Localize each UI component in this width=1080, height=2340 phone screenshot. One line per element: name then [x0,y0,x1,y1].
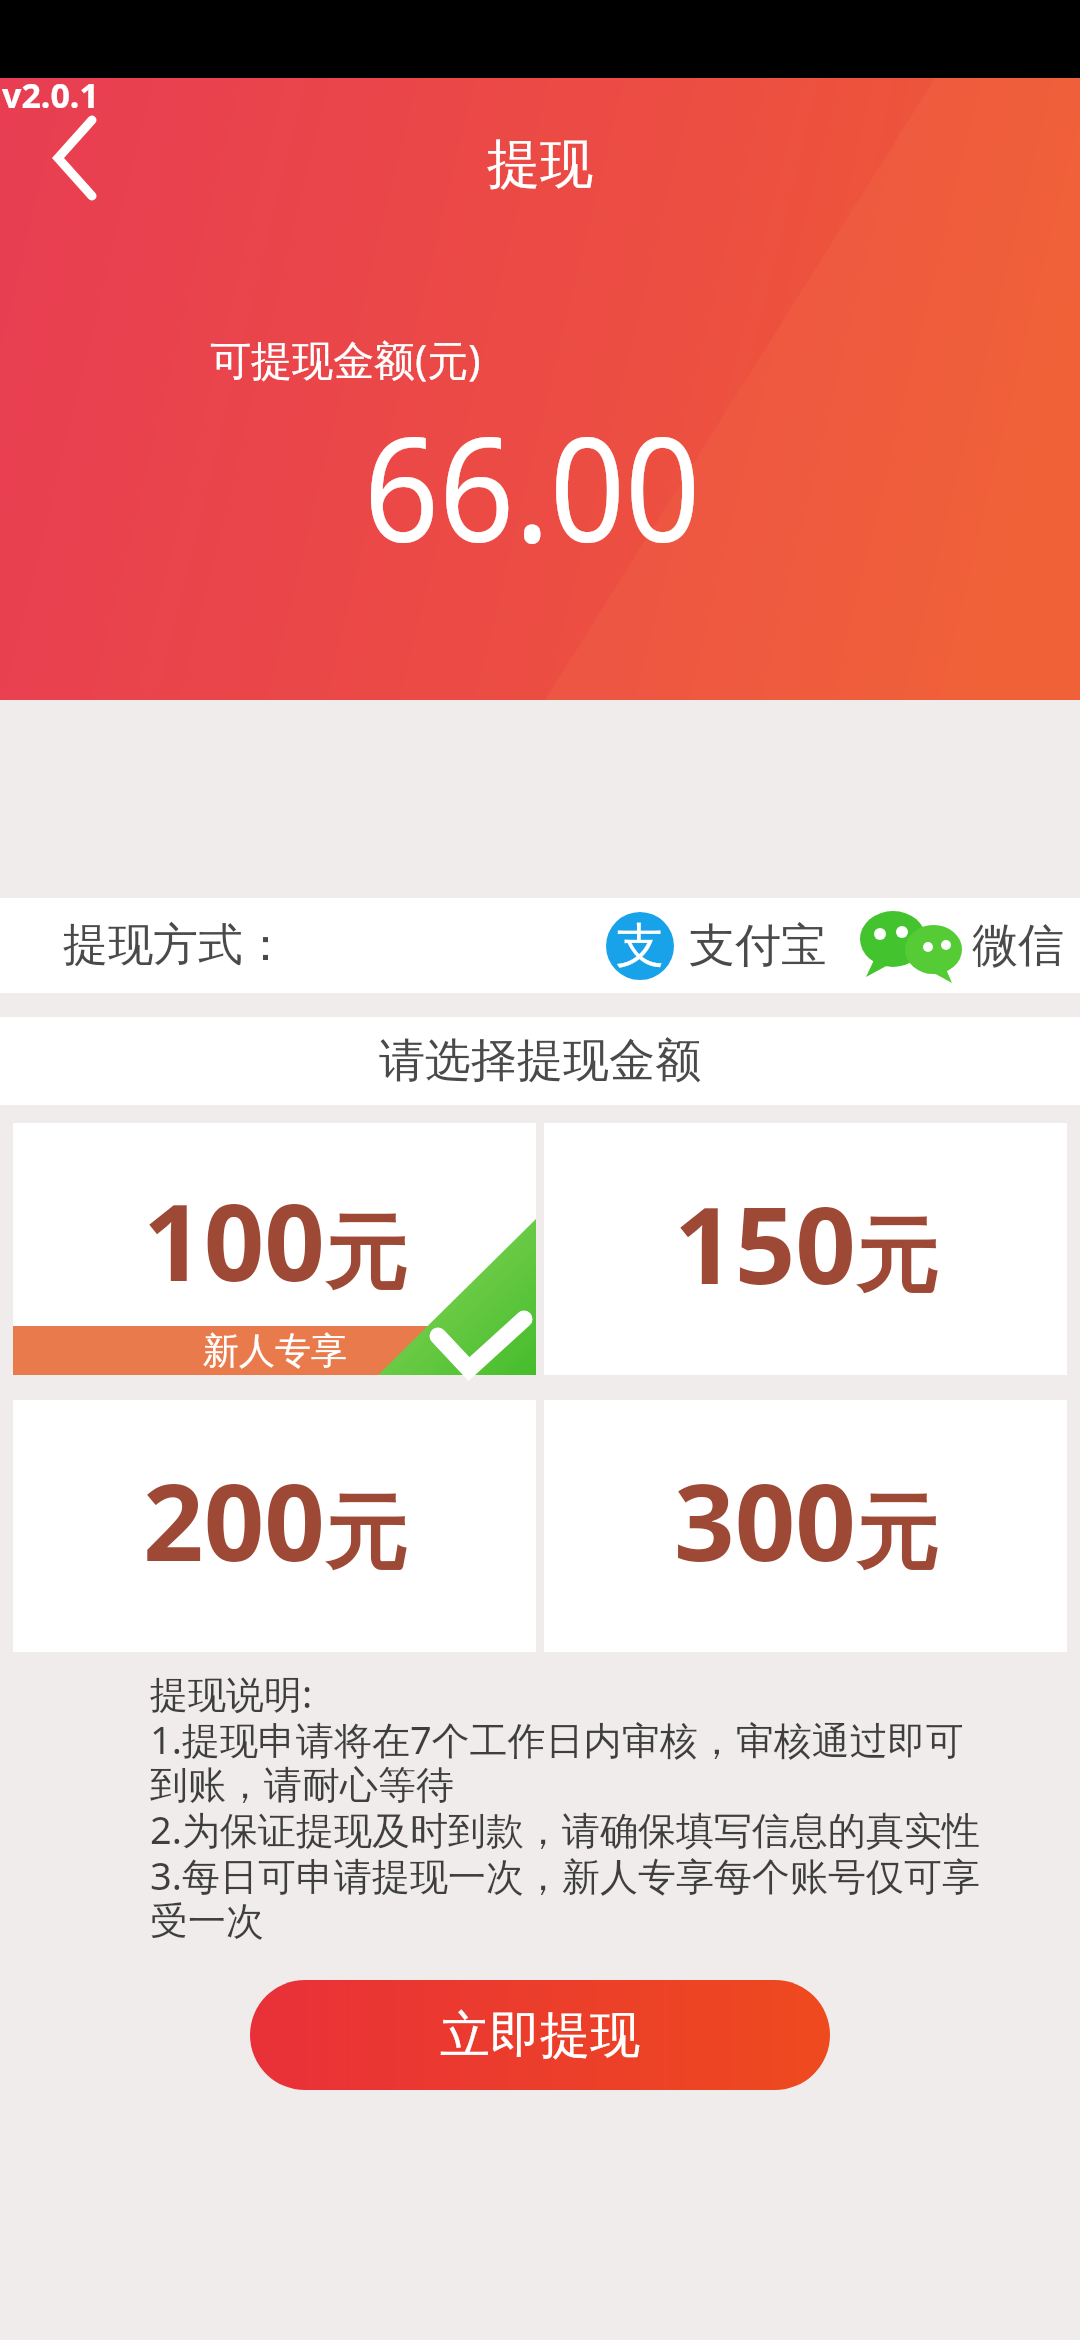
staticText: 66.00 [364,388,701,584]
button[interactable]: 300元 [544,1400,1067,1652]
button[interactable]: 150元 [544,1123,1067,1375]
staticText: 100元 [143,1168,407,1312]
staticText: 300元 [674,1448,938,1592]
staticText: 150元 [674,1171,938,1315]
staticText: 提现 [487,131,593,198]
staticText: 微信 [972,917,1064,975]
staticText: 支 [616,916,664,976]
button[interactable] [30,108,110,208]
staticText: 提现方式： [63,917,288,974]
staticText: 支付宝 [689,917,827,975]
button[interactable]: 立即提现 [250,1980,830,2090]
staticText: 提现说明: 1.提现申请将在7个工作日内审核，审核通过即可 到账，请耐心等待 2… [150,1667,980,1945]
button[interactable]: 支 [606,898,827,993]
staticText: 200元 [143,1448,407,1592]
staticText: v2.0.1 [2,72,99,118]
staticText: 立即提现 [440,2004,640,2067]
staticText: 可提现金额(元) [210,331,481,387]
button[interactable]: 200元 [13,1400,536,1652]
staticText: 请选择提现金额 [379,1032,701,1090]
staticText: 新人专享 [203,1328,347,1373]
button[interactable]: 100元 [13,1123,536,1375]
button[interactable]: 微信 [858,898,1064,993]
